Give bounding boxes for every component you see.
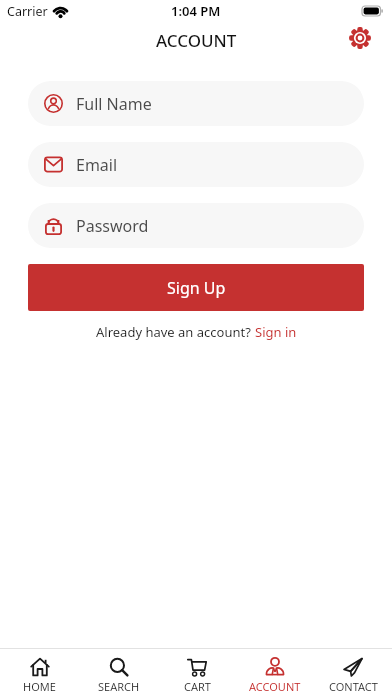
button[interactable]: Full Name bbox=[28, 81, 364, 126]
staticText: Already have an account? bbox=[96, 323, 255, 341]
staticText: 1:04 PM bbox=[171, 2, 221, 20]
button[interactable]: CART bbox=[158, 649, 236, 694]
staticText: Carrier bbox=[7, 3, 48, 20]
staticText: Email bbox=[76, 154, 118, 176]
button[interactable]: Sign Up bbox=[28, 264, 364, 311]
staticText: Password bbox=[76, 215, 149, 237]
button[interactable]: Password bbox=[28, 203, 364, 248]
button[interactable] bbox=[348, 26, 372, 50]
staticText: ACCOUNT bbox=[156, 29, 237, 52]
staticText: Full Name bbox=[76, 93, 152, 115]
button[interactable]: SEARCH bbox=[79, 649, 158, 694]
button[interactable]: ACCOUNT bbox=[236, 649, 314, 694]
button[interactable]: CONTACT bbox=[314, 649, 392, 694]
staticText: HOME bbox=[23, 679, 56, 694]
staticText: SEARCH bbox=[98, 679, 140, 694]
staticText: CART bbox=[184, 679, 211, 694]
button[interactable]: HOME bbox=[0, 649, 79, 694]
staticText: Sign in bbox=[255, 323, 297, 341]
staticText: ACCOUNT bbox=[249, 679, 301, 694]
button[interactable]: Sign in bbox=[255, 323, 297, 341]
button[interactable]: Email bbox=[28, 142, 364, 187]
staticText: CONTACT bbox=[329, 679, 378, 694]
staticText: Sign Up bbox=[167, 277, 226, 299]
